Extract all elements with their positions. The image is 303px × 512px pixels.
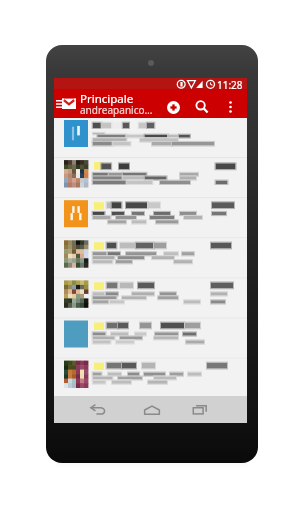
staticText: Principale <box>80 91 156 107</box>
button[interactable]: Home <box>138 396 166 423</box>
button[interactable]: Open navigation drawer <box>54 93 66 114</box>
staticText: 11:28 <box>217 78 243 89</box>
button[interactable]: Back <box>84 396 112 423</box>
staticText: andreapanico1… <box>80 103 156 117</box>
button[interactable]: More options <box>222 98 241 118</box>
button[interactable]: Recent apps <box>186 396 214 423</box>
button[interactable]: Search <box>189 98 214 118</box>
button[interactable]: Compose <box>161 98 186 118</box>
